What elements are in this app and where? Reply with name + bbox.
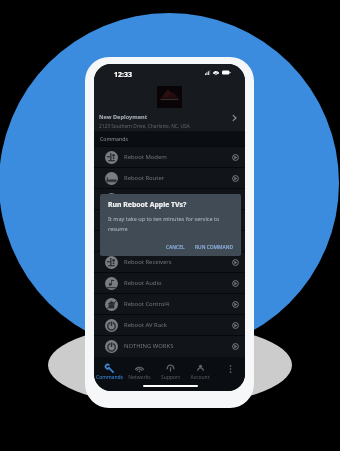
staticText: Reboot Router [124,174,165,182]
button[interactable]: Reboot Router [94,168,245,188]
button[interactable]: NOTHING WORKS [94,336,245,356]
button[interactable]: Account [185,357,215,381]
staticText: Support [161,374,180,381]
staticText: RUN COMMAND [195,244,234,251]
staticText: Run Reboot Apple TVs? [108,200,187,209]
button[interactable]: Reboot Audio [94,273,245,293]
button[interactable]: Open deployment [230,111,240,125]
staticText: Reboot Control4 [124,300,170,308]
staticText: Reboot AV Rack [124,321,167,329]
staticText: Account [190,374,210,381]
staticText: 12:33 [114,70,132,80]
button[interactable]: Reboot Lighting [94,210,245,230]
staticText: Commands [100,135,128,142]
staticText: CANCEL [166,244,185,251]
staticText: Reboot Apple TVs [124,195,173,203]
button[interactable]: RUN COMMAND [194,242,235,253]
button[interactable]: More options [215,357,245,379]
staticText: Reboot Modem [124,153,167,161]
button[interactable]: Reboot Control4 [94,294,245,314]
button[interactable]: Reboot AV Rack [94,315,245,335]
staticText: Reboot Receivers [124,258,172,266]
button[interactable]: Commands [94,357,124,381]
button[interactable]: Reboot Modem [94,147,245,167]
staticText: NOTHING WORKS [124,342,174,350]
button[interactable]: Reboot Receivers [94,252,245,272]
staticText: New Deployment [99,113,148,121]
button[interactable]: Reboot Apple TVs [94,189,245,209]
button[interactable]: Networks [124,357,154,381]
button[interactable]: CANCEL [165,242,186,253]
staticText: Commands [96,374,123,381]
button[interactable]: Reboot Cameras [94,231,245,251]
staticText: Reboot Audio [124,279,162,287]
staticText: Reboot Lighting [124,216,169,224]
staticText: It may take up to ten minutes for servic… [108,215,236,232]
staticText: 2123 Southern Drive, Charlotte, NC, USA [99,123,190,130]
button[interactable]: Support [155,357,185,381]
staticText: Networks [128,374,151,381]
